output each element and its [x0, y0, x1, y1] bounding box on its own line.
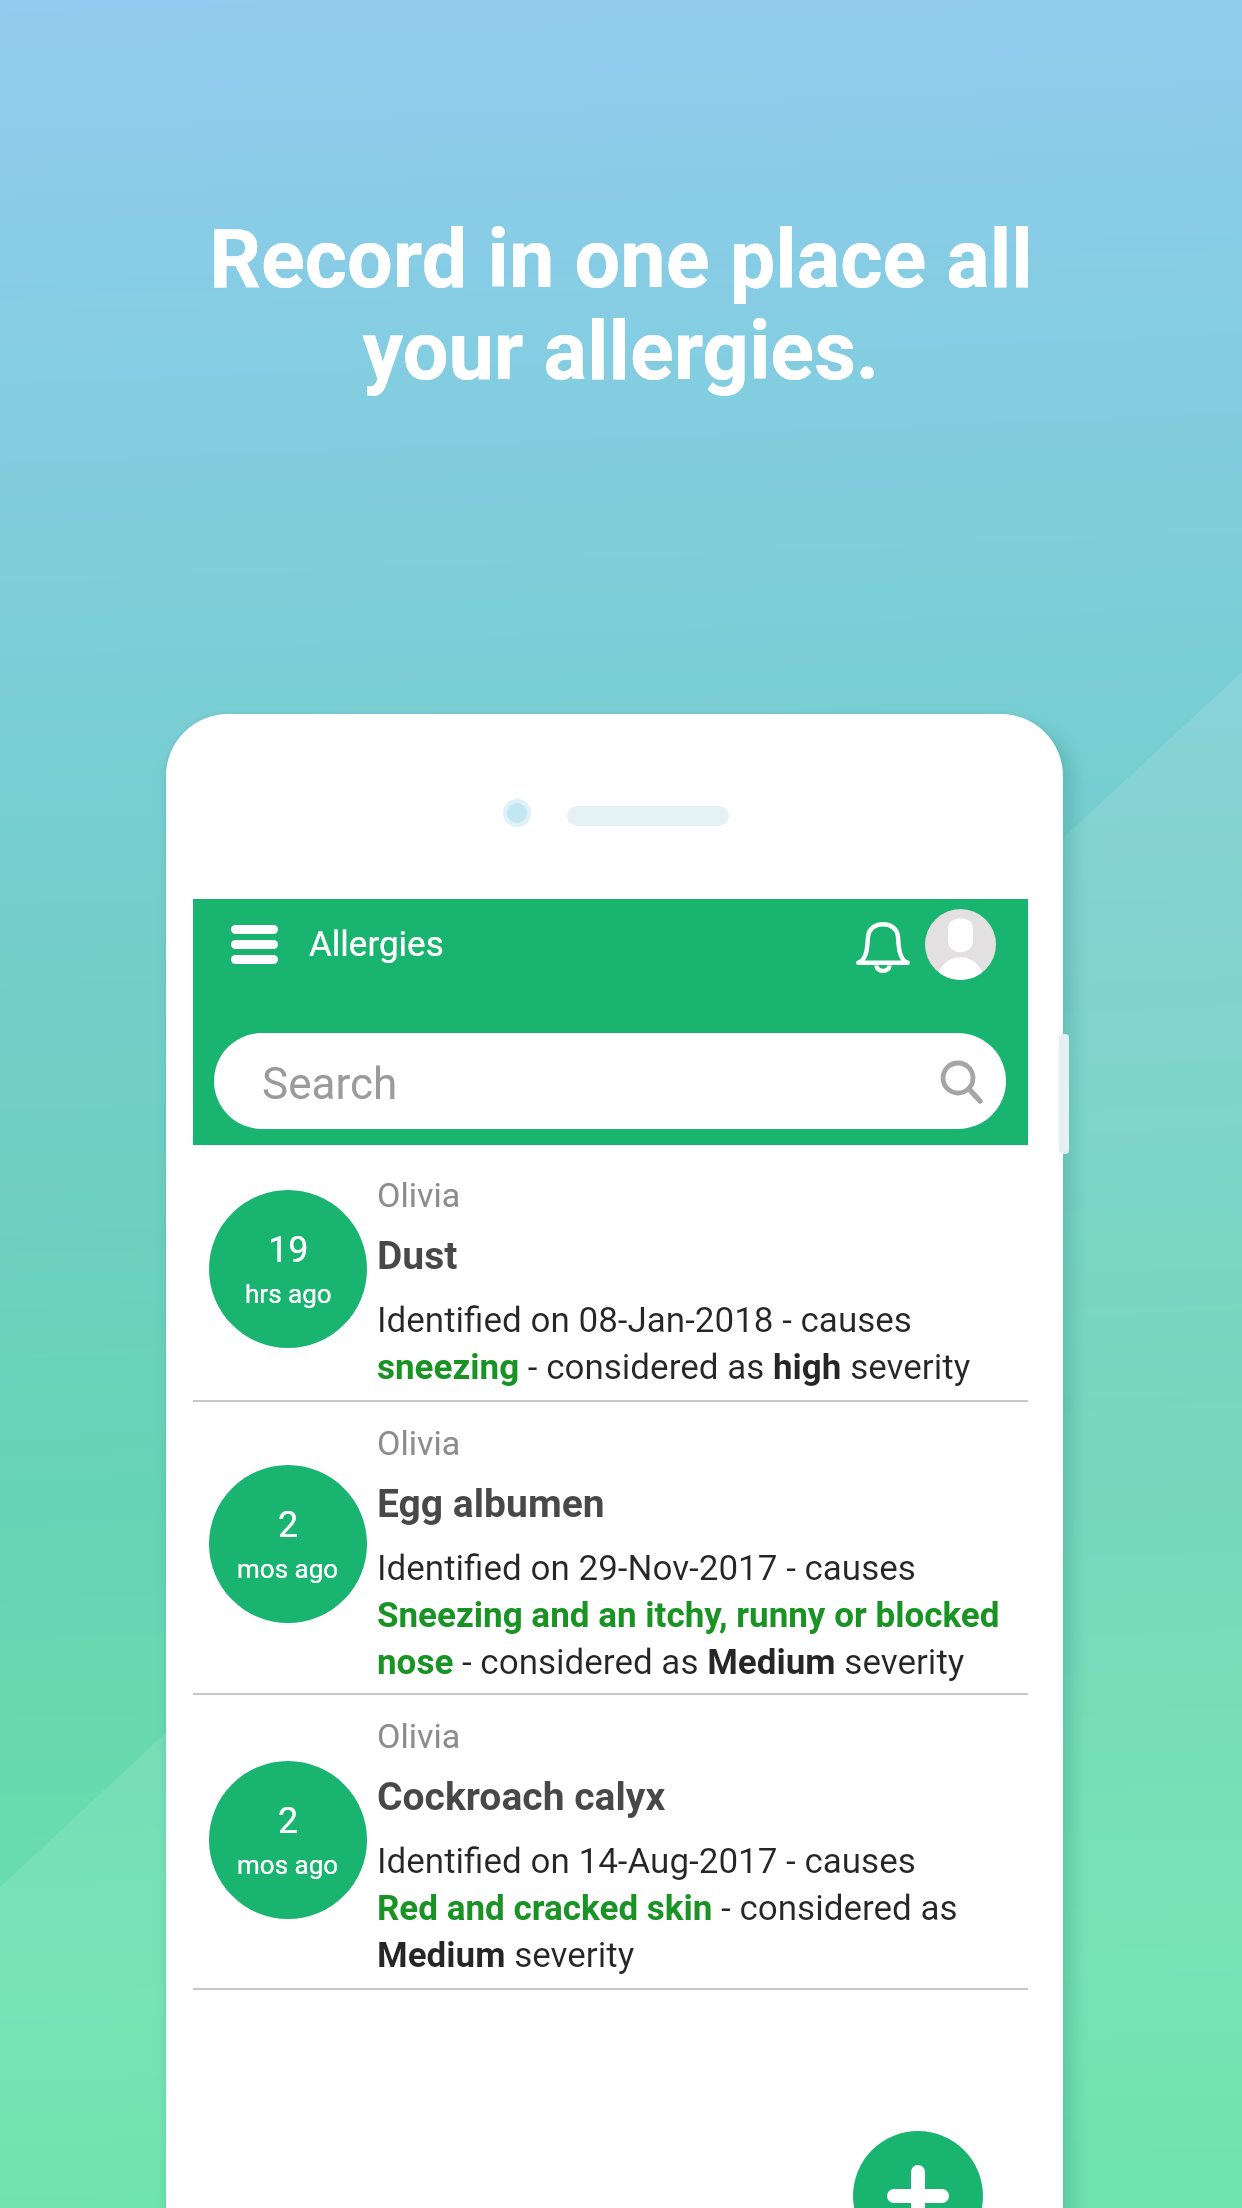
staticText: mos ago	[237, 1554, 339, 1584]
staticText: Olivia	[377, 1175, 461, 1215]
staticText: 19	[268, 1229, 309, 1271]
button[interactable]: Notifications	[843, 904, 923, 984]
button[interactable]: Menu	[218, 905, 290, 983]
staticText: Dust	[377, 1233, 458, 1279]
button[interactable]: Search allergies	[214, 1033, 1006, 1129]
button[interactable]: Add allergy	[853, 2131, 983, 2208]
staticText: 2	[278, 1504, 299, 1546]
staticText: Allergies	[309, 924, 444, 965]
staticText: Egg albumen	[377, 1481, 605, 1527]
staticText: hrs ago	[245, 1279, 332, 1309]
staticText: Identified on 14-Aug-2017 - causes Red a…	[377, 1841, 958, 1976]
staticText: Identified on 08-Jan-2018 - causes sneez…	[377, 1300, 971, 1388]
staticText: Search	[262, 1058, 398, 1110]
button[interactable]: 2	[193, 1695, 1028, 1988]
button[interactable]: Profile	[925, 909, 996, 980]
staticText: Olivia	[377, 1423, 461, 1463]
button[interactable]: 19	[193, 1145, 1028, 1400]
staticText: mos ago	[237, 1850, 339, 1880]
staticText: Olivia	[377, 1716, 461, 1756]
staticText: Identified on 29-Nov-2017 - causes Sneez…	[377, 1548, 1000, 1683]
staticText: 2	[278, 1800, 299, 1842]
staticText: Record in one place all your allergies.	[0, 212, 1242, 399]
staticText: Cockroach calyx	[377, 1774, 666, 1820]
button[interactable]: 2	[193, 1402, 1028, 1693]
